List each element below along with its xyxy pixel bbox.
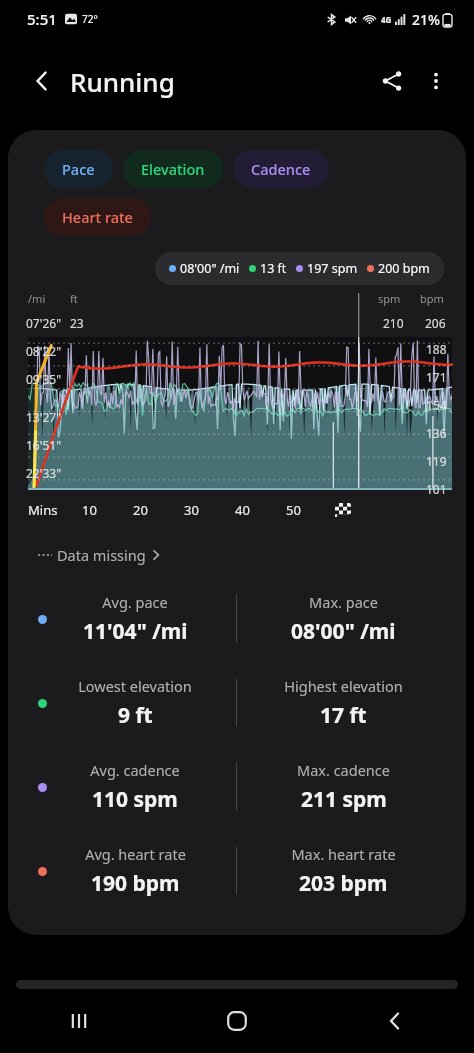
staticText: 136 <box>426 425 447 441</box>
staticText: Running <box>70 64 175 99</box>
button[interactable]: Recents <box>0 989 158 1053</box>
staticText: /mi <box>28 291 46 306</box>
button[interactable]: Home <box>158 989 316 1053</box>
staticText: ft <box>70 291 78 306</box>
staticText: 171 <box>426 369 447 385</box>
button[interactable]: Back <box>20 59 64 103</box>
button[interactable]: Pace <box>44 150 113 188</box>
staticText: 5:51 <box>27 9 57 29</box>
staticText: 40 <box>235 501 250 519</box>
staticText: 13 ft <box>260 260 287 277</box>
staticText: 9 ft <box>118 701 153 730</box>
button[interactable]: Back <box>316 989 474 1053</box>
staticText: Max. heart rate <box>291 844 396 864</box>
staticText: 17 ft <box>320 701 367 730</box>
staticText: 211 spm <box>301 785 387 814</box>
staticText: Cadence <box>251 159 311 179</box>
staticText: 110 spm <box>92 785 178 814</box>
staticText: 10 <box>82 501 97 519</box>
staticText: 16'51" <box>26 437 62 453</box>
staticText: 22'33" <box>26 465 62 481</box>
staticText: 23 <box>70 315 84 331</box>
staticText: Mins <box>28 501 58 519</box>
staticText: Max. pace <box>309 592 378 612</box>
staticText: Lowest elevation <box>78 676 192 696</box>
staticText: 11'04" /mi <box>83 617 188 646</box>
staticText: 08'22" <box>26 343 62 359</box>
button[interactable]: Cadence <box>233 150 329 188</box>
button[interactable]: Share <box>370 59 414 103</box>
button[interactable]: Heart rate <box>44 198 151 236</box>
staticText: Max. cadence <box>297 760 390 780</box>
staticText: 190 bpm <box>91 869 180 898</box>
staticText: 08'00" /mi <box>180 260 240 277</box>
staticText: 08'00" /mi <box>291 617 396 646</box>
staticText: 30 <box>184 501 199 519</box>
staticText: 21% <box>412 10 440 29</box>
staticText: bpm <box>420 291 444 306</box>
staticText: 119 <box>426 453 447 469</box>
staticText: 154 <box>426 397 447 413</box>
button[interactable]: Lowest elevation <box>8 661 466 745</box>
staticText: Pace <box>62 159 95 179</box>
staticText: 50 <box>286 501 301 519</box>
button[interactable]: More options <box>414 59 458 103</box>
staticText: Avg. heart rate <box>85 844 186 864</box>
staticText: 203 bpm <box>299 869 388 898</box>
staticText: Elevation <box>141 159 205 179</box>
staticText: 188 <box>426 341 447 357</box>
button[interactable]: Data missing <box>36 541 164 569</box>
staticText: 72° <box>82 12 98 26</box>
staticText: 4G <box>381 14 392 25</box>
staticText: spm <box>378 291 401 306</box>
staticText: Avg. cadence <box>90 760 180 780</box>
staticText: 101 <box>426 481 447 497</box>
button[interactable]: Avg. cadence <box>8 745 466 829</box>
staticText: 07'26" <box>26 315 62 331</box>
staticText: Heart rate <box>62 207 133 227</box>
staticText: 09'35" <box>26 371 62 387</box>
staticText: 210 <box>383 315 404 331</box>
staticText: 197 spm <box>307 260 358 277</box>
staticText: 20 <box>133 501 148 519</box>
button[interactable]: Elevation <box>123 150 223 188</box>
staticText: 206 <box>425 315 446 331</box>
staticText: Avg. pace <box>102 592 168 612</box>
staticText: Data missing <box>57 545 146 565</box>
button[interactable]: Avg. heart rate <box>8 829 466 913</box>
staticText: Highest elevation <box>284 676 403 696</box>
button[interactable]: Avg. pace <box>8 577 466 661</box>
staticText: 13'27" <box>26 409 62 425</box>
staticText: 200 bpm <box>378 260 430 277</box>
